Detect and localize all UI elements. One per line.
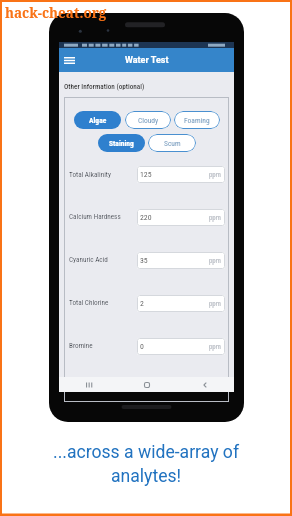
staticText: ppm xyxy=(209,214,221,222)
button[interactable]: Staining xyxy=(98,134,145,152)
staticText: Water Test xyxy=(125,55,169,66)
staticText: Calcium Hardness xyxy=(69,212,121,220)
button[interactable]: Home xyxy=(118,377,176,392)
staticText: Bromine xyxy=(69,341,93,349)
button[interactable]: Back xyxy=(176,377,234,392)
staticText: Total Chlorine xyxy=(69,298,109,306)
staticText: ppm xyxy=(209,257,221,265)
staticText: Cyanuric Acid xyxy=(69,255,108,263)
button[interactable]: 125 xyxy=(137,166,225,183)
staticText: ...across a wide-array of analytes! xyxy=(0,442,292,486)
button[interactable]: Foaming xyxy=(174,111,220,129)
staticText: Total Alkalinity xyxy=(69,170,111,178)
staticText: ppm xyxy=(209,300,221,308)
staticText: Cloudy xyxy=(138,116,159,125)
button[interactable]: Open navigation menu xyxy=(59,48,80,72)
button[interactable]: Scum xyxy=(148,134,196,152)
staticText: ppm xyxy=(209,343,221,351)
staticText: 2 xyxy=(140,299,144,308)
button[interactable]: 0 xyxy=(137,338,225,355)
staticText: Other Information (optional) xyxy=(64,82,145,90)
staticText: 125 xyxy=(140,170,152,179)
button[interactable]: 220 xyxy=(137,209,225,226)
staticText: 220 xyxy=(140,213,152,222)
staticText: 35 xyxy=(140,256,148,265)
staticText: Foaming xyxy=(184,116,210,125)
staticText: Staining xyxy=(109,139,134,148)
staticText: hack-cheat.org xyxy=(5,4,107,22)
button[interactable]: Algae xyxy=(74,111,121,129)
button[interactable]: Recent apps xyxy=(59,377,118,392)
staticText: ppm xyxy=(209,171,221,179)
button[interactable]: Cloudy xyxy=(125,111,171,129)
staticText: Scum xyxy=(164,139,181,148)
staticText: 0 xyxy=(140,342,144,351)
button[interactable]: 2 xyxy=(137,295,225,312)
staticText: Algae xyxy=(89,116,107,125)
button[interactable]: 35 xyxy=(137,252,225,269)
